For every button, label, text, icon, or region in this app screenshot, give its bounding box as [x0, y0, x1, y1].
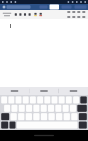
- button[interactable]: Key: [59, 96, 65, 103]
- button[interactable]: Text style: [13, 10, 18, 19]
- button[interactable]: Text style: [18, 10, 23, 19]
- button[interactable]: Key: [1, 96, 7, 103]
- button[interactable]: Key: [70, 105, 76, 112]
- button[interactable]: Key: [4, 105, 10, 112]
- button[interactable]: Suggestion: [29, 87, 58, 95]
- button[interactable]: Key: [30, 96, 36, 103]
- button[interactable]: List style: [72, 10, 75, 14]
- button[interactable]: Key: [51, 96, 57, 103]
- button[interactable]: Insert tab: [61, 5, 71, 9]
- button[interactable]: List style: [82, 10, 85, 14]
- button[interactable]: Home tab: [49, 4, 59, 10]
- button[interactable]: Key: [16, 96, 21, 103]
- button[interactable]: Key: [80, 96, 87, 103]
- button[interactable]: Key: [44, 96, 50, 103]
- button[interactable]: Document name: [6, 5, 30, 9]
- button[interactable]: List style: [77, 10, 80, 14]
- button[interactable]: Key: [19, 105, 25, 112]
- button[interactable]: List style: [67, 10, 70, 14]
- button[interactable]: Toolbar action: [10, 1, 12, 3]
- button[interactable]: Alignment: [77, 15, 80, 19]
- button[interactable]: Key: [56, 113, 62, 120]
- button[interactable]: Key: [33, 105, 39, 112]
- button[interactable]: Key: [23, 96, 29, 103]
- button[interactable]: Alignment: [72, 15, 75, 19]
- button[interactable]: Key: [64, 113, 70, 120]
- button[interactable]: Toolbar action: [2, 1, 4, 3]
- button[interactable]: Layout tab: [74, 5, 86, 9]
- button[interactable]: Key: [1, 121, 8, 129]
- button[interactable]: Text style: [23, 10, 27, 19]
- button[interactable]: Key: [79, 121, 87, 129]
- button[interactable]: Key: [48, 113, 55, 120]
- button[interactable]: Key: [11, 105, 17, 112]
- button[interactable]: Key: [8, 96, 14, 103]
- button[interactable]: Key: [26, 105, 32, 112]
- button[interactable]: Toolbar action: [84, 1, 86, 3]
- button[interactable]: Key: [10, 113, 17, 120]
- button[interactable]: Key: [1, 113, 9, 120]
- button[interactable]: Suggestion: [59, 87, 88, 95]
- button[interactable]: File tab: [39, 5, 47, 9]
- button[interactable]: Key: [71, 113, 77, 120]
- button[interactable]: Text style: [27, 10, 32, 19]
- button[interactable]: Toolbar action: [76, 1, 78, 3]
- button[interactable]: Key: [9, 121, 15, 129]
- button[interactable]: Key: [73, 96, 79, 103]
- button[interactable]: Key: [17, 121, 77, 129]
- button[interactable]: Alignment: [82, 15, 85, 19]
- button[interactable]: Key: [55, 105, 61, 112]
- button[interactable]: Key: [79, 113, 87, 120]
- button[interactable]: Key: [37, 96, 43, 103]
- button[interactable]: Key: [18, 113, 24, 120]
- button[interactable]: Alignment: [67, 15, 70, 19]
- button[interactable]: Key: [26, 113, 32, 120]
- button[interactable]: Key: [77, 105, 87, 112]
- button[interactable]: Key: [48, 105, 54, 112]
- button[interactable]: Key: [33, 113, 40, 120]
- button[interactable]: Font: [1, 10, 12, 19]
- button[interactable]: Key: [66, 96, 72, 103]
- button[interactable]: Colour: [33, 10, 38, 19]
- button[interactable]: Key: [63, 105, 69, 112]
- button[interactable]: Suggestion: [0, 87, 29, 95]
- button[interactable]: Colour: [38, 10, 43, 19]
- button[interactable]: Back: [1, 4, 6, 10]
- button[interactable]: Key: [41, 105, 47, 112]
